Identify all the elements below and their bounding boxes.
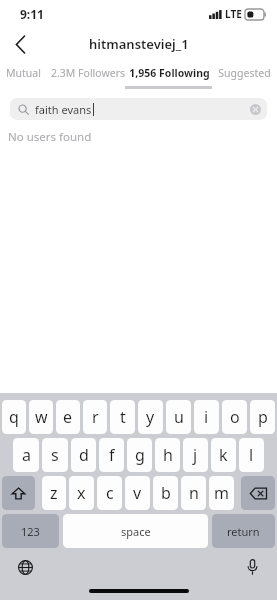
button[interactable]: p	[250, 400, 275, 434]
staticText: j	[193, 444, 198, 466]
button[interactable]: z	[42, 476, 66, 510]
button[interactable]: 123	[2, 514, 59, 548]
button[interactable]: f	[99, 438, 124, 472]
button[interactable]: Backspace	[241, 476, 275, 510]
button[interactable]: Voice input	[239, 554, 265, 580]
button[interactable]: b	[153, 476, 178, 510]
button[interactable]: i	[194, 400, 219, 434]
staticText: m	[214, 482, 229, 504]
button[interactable]: j	[183, 438, 208, 472]
button[interactable]: h	[155, 438, 180, 472]
staticText: t	[120, 406, 126, 428]
staticText: f	[109, 444, 115, 466]
staticText: r	[92, 406, 99, 428]
staticText: p	[258, 406, 268, 428]
button[interactable]: q	[2, 400, 26, 434]
button[interactable]: s	[42, 438, 68, 472]
staticText: space	[121, 524, 151, 539]
button[interactable]: a	[13, 438, 39, 472]
button[interactable]: k	[211, 438, 236, 472]
staticText: faith evans	[35, 102, 92, 117]
button[interactable]: c	[97, 476, 122, 510]
button[interactable]: return	[212, 514, 275, 548]
button[interactable]: m	[209, 476, 234, 510]
button[interactable]: v	[125, 476, 150, 510]
staticText: d	[79, 444, 89, 466]
button[interactable]: Back	[0, 28, 40, 60]
staticText: h	[163, 444, 173, 466]
staticText: 9:11	[20, 6, 44, 22]
staticText: hitmansteviej_1	[89, 35, 189, 53]
button[interactable]: e	[56, 400, 80, 434]
button[interactable]: x	[69, 476, 94, 510]
staticText: i	[204, 406, 209, 428]
button[interactable]: g	[127, 438, 152, 472]
button[interactable]: Shift	[2, 476, 35, 510]
staticText: 2.3M Followers	[51, 66, 125, 80]
staticText: return	[227, 524, 260, 539]
button[interactable]: w	[29, 400, 53, 434]
button[interactable]: y	[138, 400, 163, 434]
staticText: n	[189, 482, 199, 504]
button[interactable]: d	[71, 438, 96, 472]
button[interactable]: 2.3M Followers	[47, 60, 128, 86]
button[interactable]: t	[110, 400, 135, 434]
staticText: b	[161, 482, 171, 504]
staticText: a	[22, 444, 31, 466]
button[interactable]: r	[83, 400, 107, 434]
staticText: w	[35, 406, 48, 428]
staticText: Suggested	[218, 66, 271, 80]
staticText: o	[230, 406, 240, 428]
staticText: 123	[21, 524, 40, 539]
staticText: e	[63, 406, 73, 428]
button[interactable]: 1,956 Following	[128, 60, 211, 86]
button[interactable]: Mutual	[0, 60, 47, 86]
staticText: s	[51, 444, 59, 466]
staticText: LTE	[225, 7, 242, 21]
staticText: k	[219, 444, 228, 466]
button[interactable]: l	[239, 438, 264, 472]
staticText: z	[50, 482, 58, 504]
staticText: g	[135, 444, 145, 466]
button[interactable]: o	[222, 400, 247, 434]
staticText: y	[146, 406, 155, 428]
button[interactable]: u	[166, 400, 191, 434]
staticText: v	[133, 482, 142, 504]
button[interactable]: faith evans	[10, 98, 267, 120]
staticText: 1,956 Following	[129, 66, 210, 80]
button[interactable]: Suggested	[211, 60, 277, 86]
staticText: x	[77, 482, 86, 504]
staticText: l	[249, 444, 254, 466]
staticText: u	[174, 406, 184, 428]
staticText: Mutual	[6, 66, 41, 80]
button[interactable]: n	[181, 476, 206, 510]
button[interactable]: Clear search	[245, 99, 265, 119]
staticText: No users found	[8, 129, 92, 145]
button[interactable]: space	[63, 514, 208, 548]
staticText: c	[106, 482, 114, 504]
button[interactable]: Change keyboard language	[12, 554, 38, 580]
staticText: q	[9, 406, 19, 428]
